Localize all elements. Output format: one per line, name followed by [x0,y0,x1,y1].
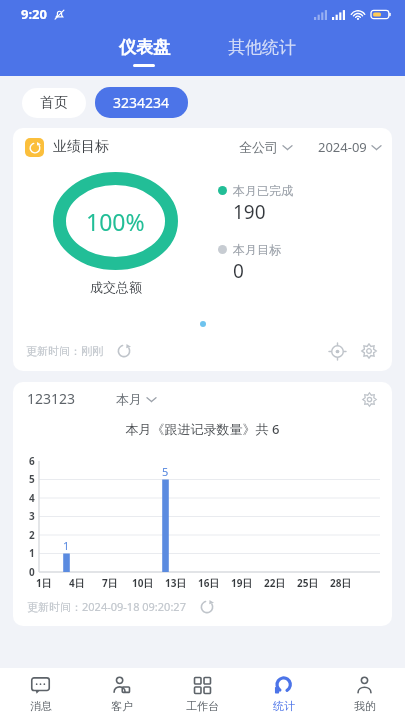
staticText: 19日 [231,576,253,590]
staticText: 100% [86,206,145,237]
button[interactable]: 消息 [0,668,81,720]
staticText: 全公司 [239,139,278,155]
staticText: 5 [162,464,169,479]
button[interactable]: 仪表盘 [85,28,203,76]
button[interactable]: 3234234 [95,87,188,118]
staticText: 3234234 [113,93,170,112]
staticText: 客户 [111,699,133,713]
staticText: 2 [29,528,35,542]
staticText: 仪表盘 [119,37,170,58]
staticText: 0 [29,565,35,579]
staticText: 0 [233,258,244,284]
button[interactable]: 工作台 [162,668,243,720]
staticText: 本月已完成 [233,183,293,198]
button[interactable]: 全公司 [239,139,292,155]
button[interactable]: 2024-09 [318,138,381,156]
staticText: 123123 [27,389,76,408]
staticText: 工作台 [186,699,219,713]
staticText: 3 [29,509,35,523]
button[interactable]: Refresh [197,597,217,617]
staticText: 本月 [116,391,142,407]
staticText: 22日 [264,576,286,590]
staticText: 更新时间：刚刚 [26,344,103,358]
button[interactable]: 统计 [243,668,324,720]
button[interactable]: Locate [325,339,349,363]
staticText: 消息 [30,699,52,713]
staticText: 9:20 [21,5,47,23]
staticText: 本月《跟进记录数量》共 6 [13,420,392,438]
button[interactable]: 其他统计 [203,28,321,76]
staticText: 其他统计 [228,37,296,58]
staticText: 25日 [297,576,319,590]
staticText: 16日 [198,576,220,590]
staticText: 28日 [330,576,352,590]
staticText: 4 [29,491,35,505]
staticText: 7日 [102,576,118,590]
button[interactable]: Refresh [114,341,134,361]
button[interactable]: Settings [358,388,380,410]
staticText: 1 [63,538,70,553]
staticText: 5 [29,472,35,486]
staticText: 我的 [354,699,376,713]
staticText: 业绩目标 [53,138,109,156]
staticText: 成交总额 [90,279,142,295]
staticText: 10日 [132,576,154,590]
staticText: 1 [29,546,35,560]
staticText: 更新时间：2024-09-18 09:20:27 [27,599,186,614]
staticText: 2024-09 [318,138,367,156]
staticText: 首页 [40,94,68,112]
button[interactable]: 我的 [324,668,405,720]
staticText: 统计 [273,699,295,713]
button[interactable]: Settings [357,339,381,363]
staticText: 6 [29,454,35,468]
button[interactable]: 本月 [116,391,156,407]
button[interactable]: 客户 [81,668,162,720]
button[interactable]: 首页 [22,88,86,118]
staticText: 190 [233,199,266,225]
staticText: 4日 [69,576,85,590]
staticText: 1日 [36,576,52,590]
staticText: 本月目标 [233,242,281,257]
staticText: 13日 [165,576,187,590]
